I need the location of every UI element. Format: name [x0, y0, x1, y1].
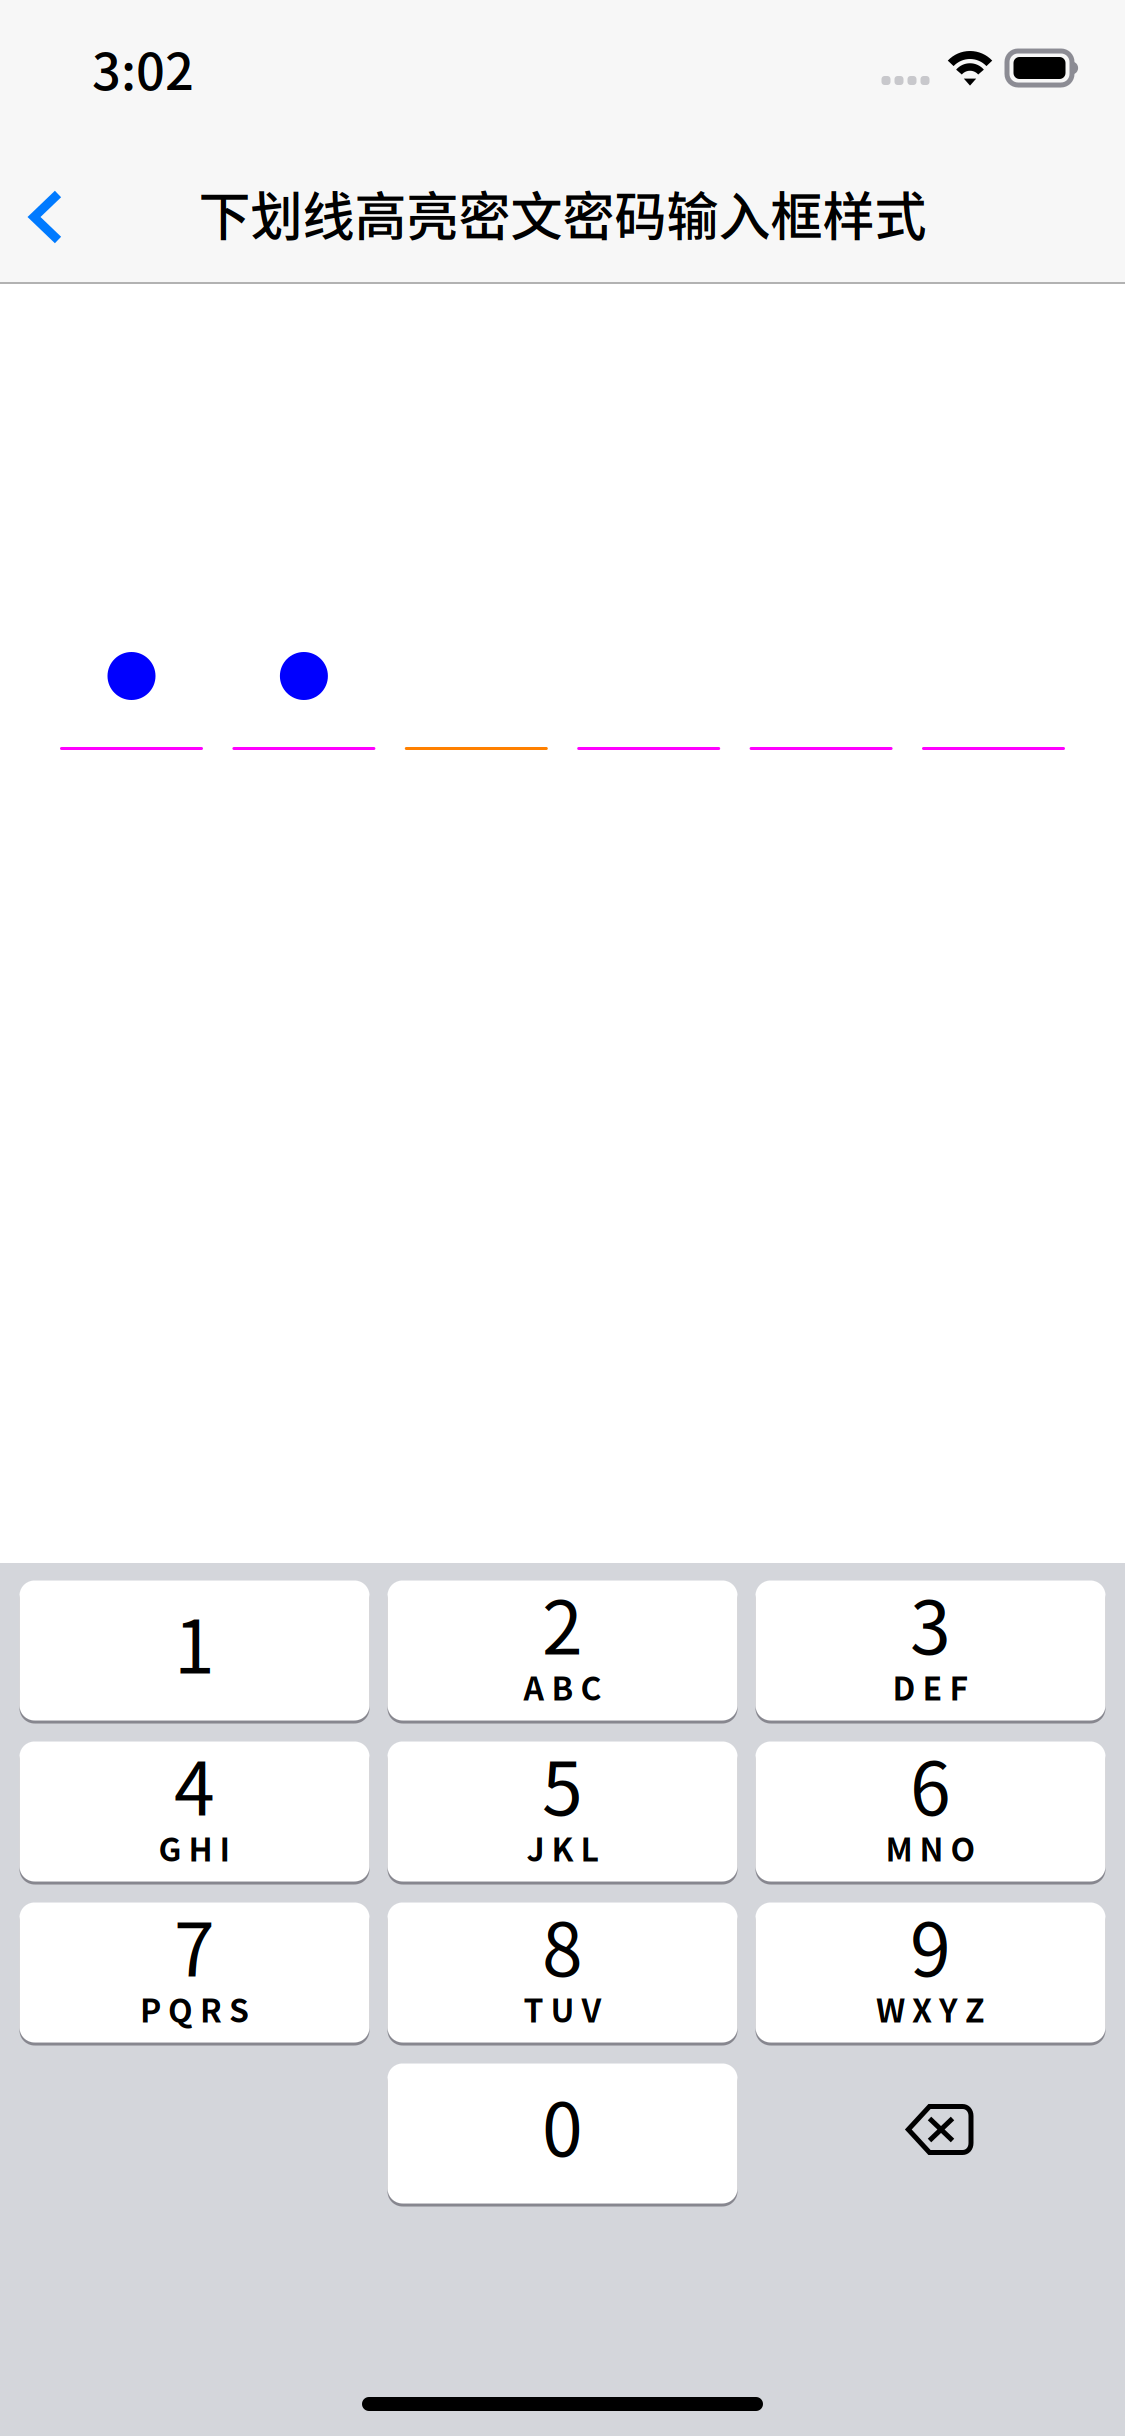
staticText: 4 — [174, 1730, 215, 1837]
staticText: 下划线高亮密文密码输入框样式 — [198, 175, 926, 251]
button[interactable]: Back — [0, 154, 92, 264]
button[interactable]: Delete — [755, 2062, 1105, 2205]
staticText: D E F — [892, 1663, 968, 1710]
staticText: W X Y Z — [876, 1985, 985, 2032]
button[interactable]: 3 — [755, 1579, 1105, 1722]
staticText: 6 — [910, 1730, 951, 1837]
button[interactable]: 9 — [755, 1901, 1105, 2044]
staticText: A B C — [523, 1663, 601, 1710]
staticText: 7 — [174, 1891, 215, 1998]
staticText: 0 — [542, 2071, 583, 2178]
staticText: T U V — [523, 1985, 601, 2032]
staticText: 1 — [174, 1588, 215, 1695]
staticText: 9 — [910, 1891, 951, 1998]
staticText: 8 — [542, 1891, 583, 1998]
staticText: 3 — [910, 1569, 951, 1676]
button[interactable]: Password — [60, 652, 1065, 750]
button[interactable]: 5 — [387, 1740, 737, 1883]
button[interactable]: 6 — [755, 1740, 1105, 1883]
button[interactable]: 7 — [19, 1901, 369, 2044]
button[interactable]: 4 — [19, 1740, 369, 1883]
staticText: 3:02 — [92, 31, 194, 105]
button[interactable]: 8 — [387, 1901, 737, 2044]
staticText: J K L — [526, 1824, 598, 1871]
staticText: 5 — [542, 1730, 583, 1837]
staticText: 2 — [542, 1569, 583, 1676]
staticText: G H I — [158, 1824, 230, 1871]
button[interactable]: 0 — [387, 2062, 737, 2205]
button[interactable]: 2 — [387, 1579, 737, 1722]
staticText: P Q R S — [140, 1985, 249, 2032]
staticText: M N O — [885, 1824, 975, 1871]
button[interactable]: 1 — [19, 1579, 369, 1722]
